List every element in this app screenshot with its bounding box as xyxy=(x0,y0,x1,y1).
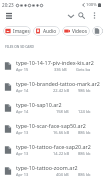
staticText: Videos xyxy=(72,28,87,35)
button[interactable]: type-10-tattoo-face-sap20.ar2 xyxy=(0,139,103,160)
staticText: type-10-scar-face-sap50.ar2 xyxy=(16,122,86,129)
button[interactable]: type-10-14-17-piv-index-kis.ar2 xyxy=(0,55,103,76)
staticText: Gets ba xyxy=(76,67,91,72)
staticText: 986 kb xyxy=(78,88,91,93)
button[interactable]: type-10-sap10.ar2 xyxy=(0,97,103,118)
staticText: 100% xyxy=(86,2,97,8)
staticText: Audio xyxy=(43,28,57,35)
button[interactable]: Audio xyxy=(33,26,60,36)
staticText: 158 kB xyxy=(56,109,69,114)
staticText: 886 kb xyxy=(78,130,91,135)
staticText: 336 kB xyxy=(54,67,67,72)
staticText: 404 kB xyxy=(56,172,69,177)
staticText: 16.66 kB xyxy=(53,130,69,135)
button[interactable]: Images xyxy=(3,26,31,36)
staticText: Apr 15 xyxy=(16,67,29,72)
staticText: type-10-branded-tattoo-mark.ar2 xyxy=(16,80,100,87)
staticText: Apr 13 xyxy=(16,172,29,177)
staticText: FILES ON SD CARD xyxy=(5,44,35,48)
staticText: Images xyxy=(13,28,30,35)
staticText: 14.22 kB xyxy=(53,151,69,156)
button[interactable]: type-10-branded-tattoo-mark.ar2 xyxy=(0,76,103,97)
button[interactable]: More options xyxy=(88,9,101,22)
staticText: type-10-tattoo-zoom.ar2 xyxy=(16,164,78,171)
button[interactable]: Videos xyxy=(62,26,90,36)
staticText: 124 kb xyxy=(78,109,91,114)
button[interactable]: Sort options xyxy=(64,9,77,22)
staticText: type-10-sap10.ar2 xyxy=(16,101,62,108)
staticText: 886 kb xyxy=(78,151,91,156)
button[interactable]: Docs xyxy=(92,26,103,36)
staticText: type-10-tattoo-face-sap20.ar2 xyxy=(16,143,91,150)
button[interactable]: Navigation menu xyxy=(2,9,15,22)
staticText: 20:23 xyxy=(2,2,14,8)
staticText: Apr 14 xyxy=(16,109,29,114)
button[interactable]: type-10-tattoo-zoom.ar2 xyxy=(0,160,103,181)
staticText: type-10-14-17-piv-index-kis.ar2 xyxy=(16,59,94,66)
staticText: Apr 13 xyxy=(16,130,29,135)
staticText: Apr 13 xyxy=(16,151,29,156)
button[interactable]: Search xyxy=(75,9,88,22)
button[interactable]: type-10-scar-face-sap50.ar2 xyxy=(0,118,103,139)
staticText: 886 kb xyxy=(78,172,91,177)
staticText: Apr 14 xyxy=(16,88,29,93)
staticText: 22.42 kB xyxy=(53,88,69,93)
